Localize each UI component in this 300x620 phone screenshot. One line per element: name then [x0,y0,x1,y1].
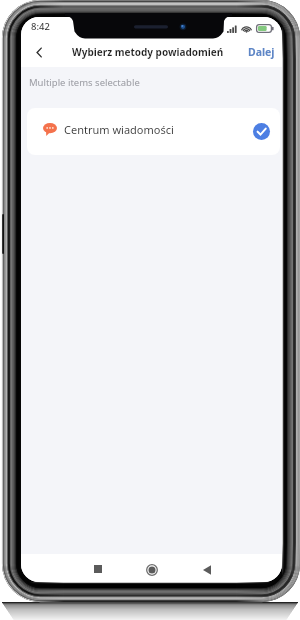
button[interactable]: Centrum wiadomości [27,108,280,155]
button[interactable]: Home [139,557,165,582]
staticText: Centrum wiadomości [64,122,174,137]
staticText: Wybierz metody powiadomień [72,45,224,59]
staticText: Dalej [248,45,275,59]
staticText: Multiple items selectable [29,76,140,89]
button[interactable]: Dalej [241,43,282,65]
button[interactable]: Recent apps [85,556,111,582]
button[interactable]: Back [194,557,220,582]
button[interactable]: Back [27,40,51,64]
staticText: 8:42 [31,20,50,33]
